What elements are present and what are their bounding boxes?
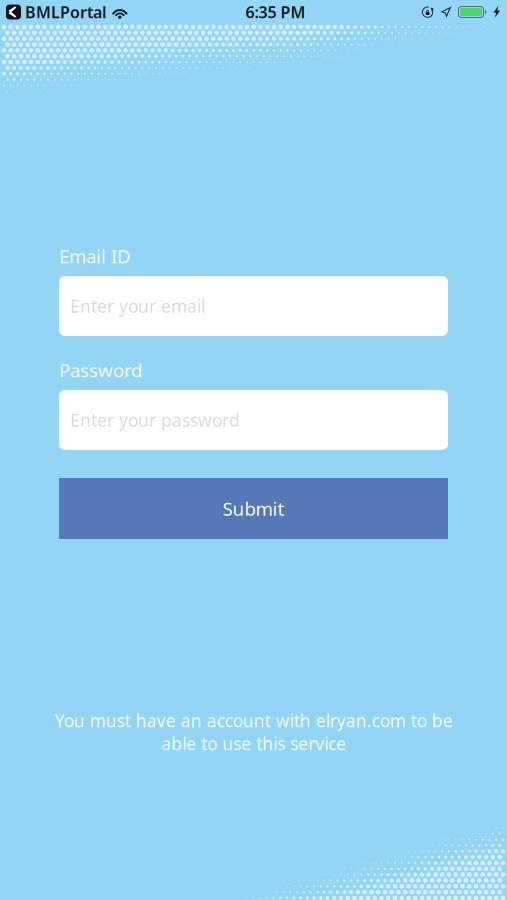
staticText: Submit <box>222 496 284 521</box>
button[interactable]: Enter your email <box>59 276 448 336</box>
button[interactable]: Back <box>6 4 21 19</box>
staticText: Enter your email <box>70 294 205 317</box>
staticText: Enter your password <box>70 408 240 431</box>
staticText: Password <box>59 358 142 382</box>
staticText: 6:35 PM <box>245 1 305 23</box>
button[interactable]: Enter your password <box>59 390 448 450</box>
staticText: BMLPortal <box>25 1 107 23</box>
staticText: Email ID <box>59 244 131 268</box>
staticText: You must have an account with elryan.com… <box>54 709 452 755</box>
button[interactable]: Submit <box>59 478 448 539</box>
